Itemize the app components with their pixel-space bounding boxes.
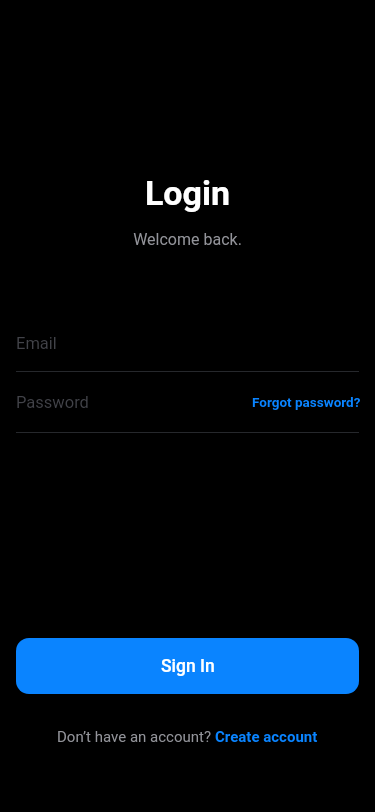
button[interactable]: Email: [16, 322, 359, 371]
staticText: Password: [16, 393, 89, 412]
button[interactable]: Create account: [215, 728, 318, 746]
staticText: Email: [16, 334, 57, 353]
staticText: Don’t have an account?: [57, 728, 215, 746]
staticText: Create account: [215, 728, 318, 746]
button[interactable]: Forgot password?: [252, 394, 361, 410]
button[interactable]: Password: [16, 393, 250, 412]
staticText: Sign In: [161, 656, 215, 677]
staticText: Welcome back.: [0, 230, 375, 249]
staticText: Login: [0, 173, 375, 213]
button[interactable]: Sign In: [16, 638, 359, 694]
staticText: Forgot password?: [252, 394, 361, 410]
